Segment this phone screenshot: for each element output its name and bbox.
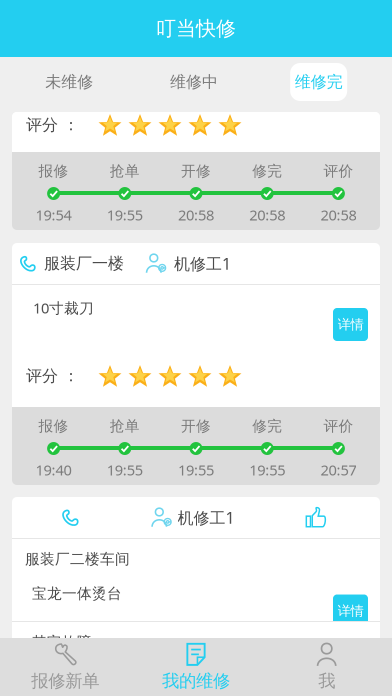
staticText: 服装厂一楼 (44, 254, 124, 273)
staticText: 评价 (323, 417, 353, 435)
button[interactable]: 我 (261, 638, 392, 696)
staticText: 机修工1 (174, 253, 231, 274)
button[interactable]: 我的维修 (131, 638, 261, 696)
staticText: 未维修 (45, 72, 93, 92)
staticText: 修完 (252, 162, 282, 180)
staticText: 报修 (39, 417, 69, 435)
staticText: 19:40 (36, 460, 72, 479)
staticText: 我 (318, 670, 335, 692)
staticText: 维修中 (170, 72, 218, 92)
staticText: 开修 (181, 162, 211, 180)
staticText: 维修完 (295, 72, 343, 92)
staticText: 其它故障 (32, 633, 92, 651)
staticText: 抢单 (110, 417, 140, 435)
staticText: 宝龙一体烫台 (32, 584, 122, 602)
staticText: 评分 ： (26, 115, 79, 135)
staticText: 详情 (337, 316, 363, 333)
staticText: 详情 (337, 603, 363, 619)
staticText: 19:55 (107, 205, 143, 224)
staticText: 20:58 (249, 205, 285, 224)
staticText: 20:58 (320, 205, 356, 224)
staticText: 19:54 (36, 205, 72, 224)
staticText: 19:55 (107, 460, 143, 479)
staticText: 20:58 (178, 205, 214, 224)
staticText: 机修工1 (177, 507, 234, 528)
staticText: 服装厂二楼车间 (25, 550, 130, 568)
staticText: 开修 (181, 417, 211, 435)
staticText: 20:57 (320, 460, 356, 479)
button[interactable]: 报修新单 (0, 638, 131, 696)
staticText: 评分 ： (26, 366, 79, 386)
staticText: 19:55 (178, 460, 214, 479)
button[interactable]: 维修中 (132, 57, 256, 107)
staticText: 评价 (323, 162, 353, 180)
button[interactable]: 维修完 (256, 57, 381, 107)
button[interactable]: 未维修 (7, 57, 132, 107)
button[interactable]: 详情 (333, 308, 368, 341)
staticText: 19:55 (249, 460, 285, 479)
staticText: 10寸裁刀 (33, 298, 94, 317)
staticText: 抢单 (110, 162, 140, 180)
staticText: 报修新单 (31, 670, 99, 692)
staticText: 叮当快修 (156, 16, 236, 41)
staticText: 修完 (252, 417, 282, 435)
staticText: 我的维修 (162, 670, 230, 692)
button[interactable]: 详情 (333, 594, 368, 627)
staticText: 报修 (39, 162, 69, 180)
